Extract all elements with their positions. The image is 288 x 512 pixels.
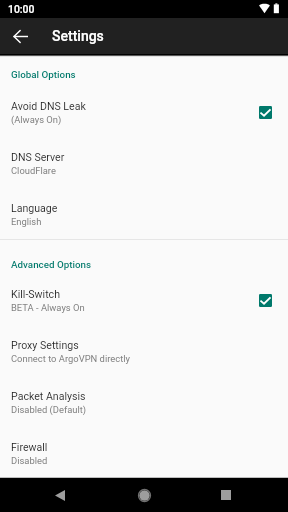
staticText: (Always On) [11,114,62,125]
staticText: DNS Server [11,151,65,163]
other: Avoid DNS Leak enabled [259,106,272,119]
other: Kill-Switch enabled [259,294,272,307]
staticText: Settings [52,28,104,44]
button[interactable]: Proxy Settings [0,339,288,390]
staticText: Packet Analysis [11,390,86,402]
staticText: Advanced Options [11,259,92,270]
staticText: 10:00 [8,3,35,15]
staticText: Proxy Settings [11,339,79,351]
staticText: English [11,216,42,227]
button[interactable]: Packet Analysis [0,390,288,441]
staticText: Disabled [11,455,48,466]
staticText: Avoid DNS Leak [11,100,86,112]
button[interactable]: Kill-Switch [0,288,288,339]
staticText: CloudFlare [11,165,56,176]
button[interactable]: Avoid DNS Leak [0,100,288,151]
staticText: Language [11,202,58,214]
staticText: Global Options [11,69,76,80]
button[interactable]: DNS Server [0,151,288,202]
staticText: Disabled (Default) [11,404,87,415]
staticText: Kill-Switch [11,288,60,300]
staticText: Connect to ArgoVPN directly [11,353,130,364]
button[interactable]: Firewall [0,441,288,477]
button[interactable]: Home [120,478,168,512]
button[interactable]: Recent apps [202,478,250,512]
button[interactable]: Language [0,202,288,239]
button[interactable]: Back [36,478,84,512]
staticText: BETA - Always On [11,302,85,313]
staticText: Firewall [11,441,48,453]
button[interactable]: Navigate up [3,18,39,54]
